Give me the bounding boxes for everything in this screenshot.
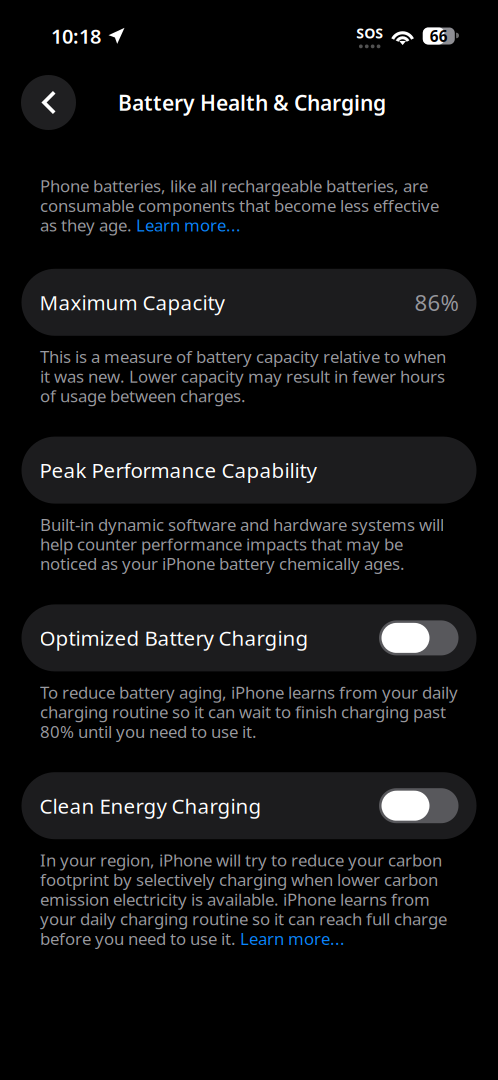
staticText: Learn more...: [240, 927, 345, 949]
staticText: SOS: [356, 24, 383, 42]
staticText: Built-in dynamic software and hardware s…: [40, 513, 444, 535]
staticText: emission electricity is available. iPhon…: [40, 888, 430, 910]
staticText: Maximum Capacity: [39, 289, 224, 316]
staticText: Optimized Battery Charging: [39, 624, 308, 652]
staticText: 80% until you need to use it.: [40, 720, 257, 742]
button[interactable]: Maximum Capacity: [0, 269, 498, 336]
staticText: consumable components that become less e…: [40, 194, 439, 216]
staticText: 66: [430, 26, 448, 46]
staticText: To reduce battery aging, iPhone learns f…: [40, 681, 458, 703]
staticText: Battery Health & Charging: [118, 88, 386, 116]
staticText: your daily charging routine so it can re…: [40, 908, 447, 930]
staticText: 86%: [414, 288, 458, 317]
button[interactable]: Back: [21, 75, 76, 130]
button[interactable]: Clean Energy Charging: [0, 772, 498, 839]
staticText: of usage between charges.: [40, 385, 246, 407]
staticText: footprint by selectively charging when l…: [40, 868, 438, 891]
staticText: help counter performance impacts that ma…: [40, 533, 403, 555]
staticText: Phone batteries, like all rechargeable b…: [40, 175, 428, 197]
button[interactable]: Optimized Battery Charging: [0, 604, 498, 671]
staticText: it was new. Lower capacity may result in…: [40, 365, 445, 387]
staticText: as they age.: [40, 214, 136, 236]
staticText: before you need to use it.: [40, 927, 240, 949]
staticText: Peak Performance Capability: [39, 456, 316, 484]
button[interactable]: Peak Performance Capability: [0, 437, 498, 504]
staticText: Learn more...: [136, 214, 241, 236]
staticText: charging routine so it can wait to finis…: [40, 701, 446, 723]
staticText: This is a measure of battery capacity re…: [40, 345, 446, 368]
staticText: Clean Energy Charging: [39, 792, 261, 819]
staticText: 10:18: [51, 23, 101, 49]
staticText: In your region, iPhone will try to reduc…: [40, 849, 442, 871]
staticText: noticed as your iPhone battery chemicall…: [40, 552, 405, 575]
